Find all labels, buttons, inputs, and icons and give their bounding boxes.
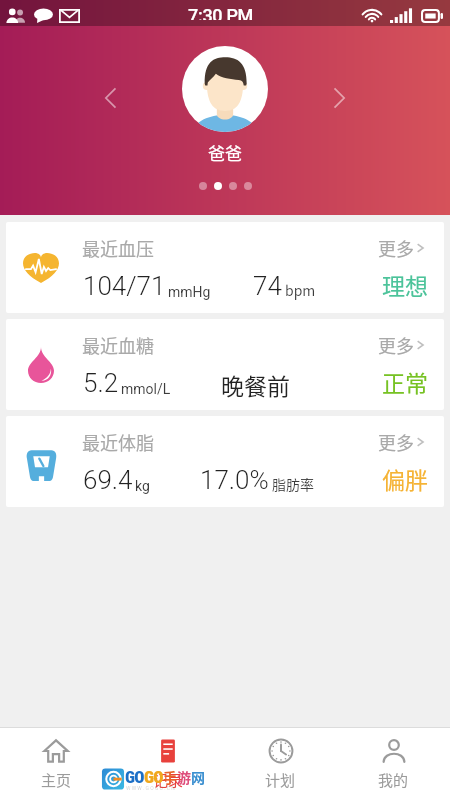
staticText: 更多: [378, 332, 414, 358]
button[interactable]: 主页: [0, 729, 112, 800]
staticText: 74: [253, 271, 282, 301]
button[interactable]: 记录: [112, 729, 224, 800]
staticText: 更多: [378, 429, 414, 455]
button[interactable]: Next profile: [323, 82, 355, 114]
button[interactable]: 更多: [374, 232, 431, 264]
staticText: 17.0%: [200, 465, 269, 495]
staticText: 偏胖: [382, 462, 428, 495]
staticText: mmol/L: [121, 381, 171, 397]
staticText: 晚餐前: [221, 368, 290, 401]
button[interactable]: 我的: [337, 729, 450, 800]
staticText: 脂肪率: [272, 474, 314, 494]
staticText: 5.2: [83, 368, 119, 398]
button[interactable]: Profile avatar: [182, 46, 268, 132]
staticText: 我的: [378, 769, 409, 791]
staticText: kg: [135, 478, 150, 494]
staticText: 主页: [41, 769, 72, 791]
button[interactable]: 更多: [374, 426, 431, 458]
button[interactable]: 计划: [224, 729, 337, 800]
staticText: mmHg: [168, 284, 211, 300]
staticText: 记录: [153, 769, 184, 791]
staticText: GO: [125, 767, 144, 787]
button[interactable]: 最近血压: [6, 222, 444, 313]
staticText: W W W . G O G O . C N: [126, 785, 175, 791]
staticText: 最近血糖: [82, 332, 154, 358]
staticText: 爸爸: [208, 140, 242, 165]
staticText: 网: [191, 767, 205, 787]
button[interactable]: 最近血糖: [6, 319, 444, 410]
staticText: 手: [163, 767, 177, 787]
staticText: 最近体脂: [82, 429, 154, 455]
staticText: 7:30 PM: [188, 5, 254, 20]
staticText: bpm: [285, 280, 316, 300]
staticText: 最近血压: [82, 235, 154, 261]
staticText: 游: [177, 767, 191, 787]
staticText: 计划: [265, 769, 296, 791]
staticText: 69.4: [83, 465, 133, 495]
staticText: 理想: [382, 268, 428, 301]
staticText: GO: [144, 767, 163, 787]
button[interactable]: 更多: [374, 329, 431, 361]
button[interactable]: Previous profile: [95, 82, 127, 114]
staticText: 104/71: [83, 271, 166, 301]
staticText: 正常: [382, 365, 428, 398]
staticText: 更多: [378, 235, 414, 261]
button[interactable]: 最近体脂: [6, 416, 444, 507]
